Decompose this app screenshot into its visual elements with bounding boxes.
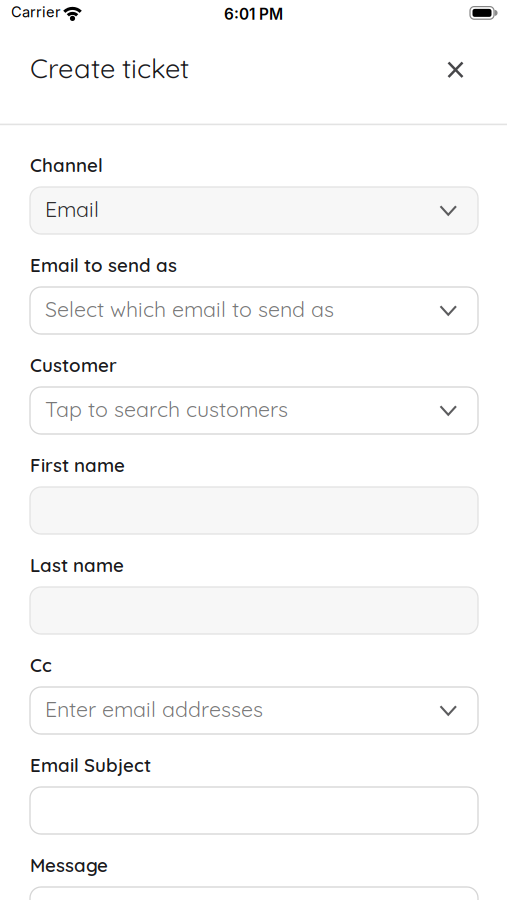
staticText: Email Subject	[30, 753, 151, 777]
button[interactable]: Last name	[30, 587, 478, 634]
button[interactable]: Customer	[30, 387, 478, 434]
staticText: Customer	[30, 353, 117, 377]
staticText: Channel	[30, 153, 103, 177]
staticText: Message	[30, 853, 108, 877]
staticText: Select which email to send as	[45, 296, 334, 322]
staticText: Email	[45, 196, 99, 222]
button[interactable]: Email Subject	[30, 787, 478, 834]
staticText: Create ticket	[30, 51, 189, 85]
button[interactable]: Channel	[30, 187, 478, 234]
staticText: First name	[30, 453, 125, 477]
button[interactable]: First name	[30, 487, 478, 534]
staticText: Email to send as	[30, 253, 177, 277]
staticText: Last name	[30, 553, 124, 577]
staticText: 6:01 PM	[224, 5, 283, 24]
staticText: Carrier	[11, 3, 61, 21]
button[interactable]: Close	[438, 52, 472, 87]
button[interactable]: Message	[30, 887, 478, 900]
button[interactable]: Cc	[30, 687, 478, 734]
staticText: Tap to search customers	[45, 396, 288, 422]
staticText: Cc	[30, 653, 52, 677]
staticText: Enter email addresses	[45, 696, 263, 722]
button[interactable]: Email to send as	[30, 287, 478, 334]
